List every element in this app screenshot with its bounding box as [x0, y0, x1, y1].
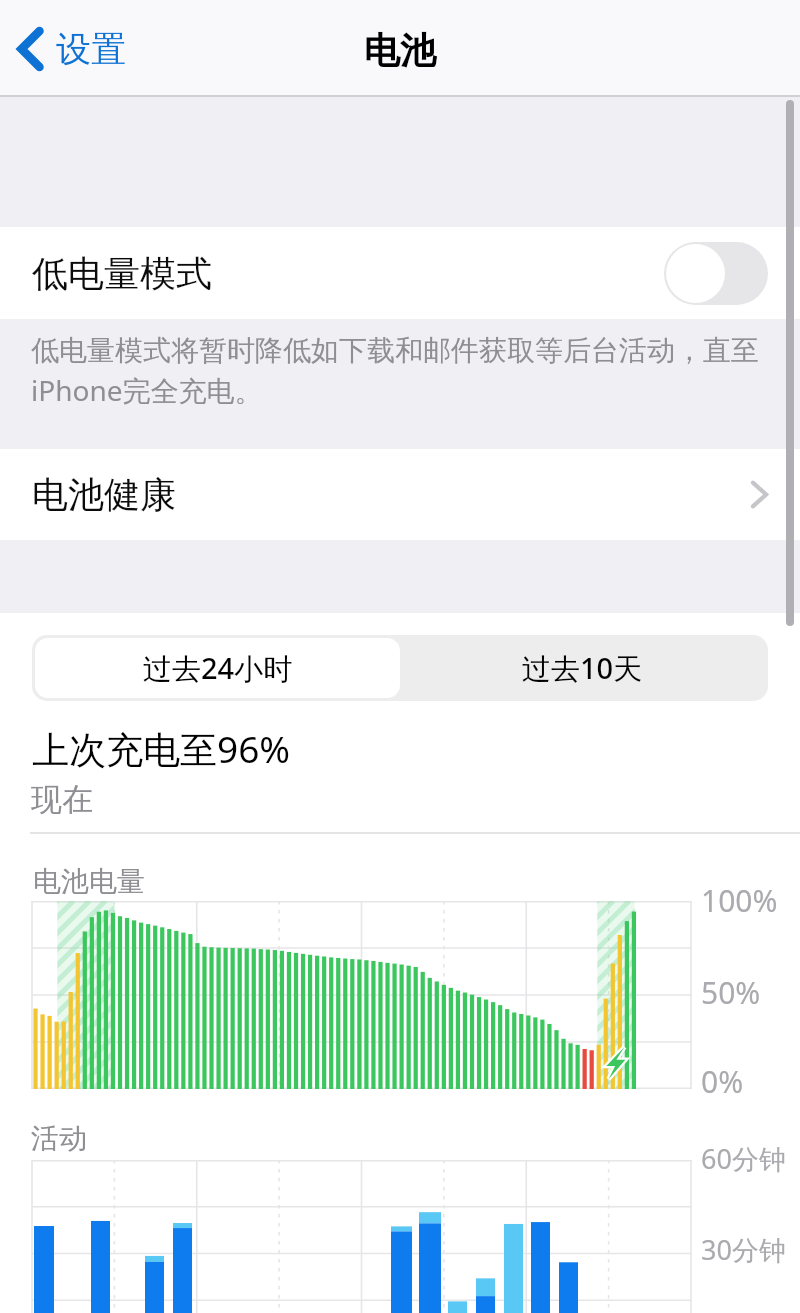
staticText: 电池 [364, 28, 436, 73]
button[interactable]: Low Power Mode toggle [664, 242, 768, 305]
staticText: 50% [701, 972, 761, 1013]
staticText: 100% [701, 880, 778, 921]
button[interactable]: 过去24小时 [35, 638, 400, 698]
button[interactable]: 设置 [13, 19, 131, 79]
staticText: 电池电量 [33, 864, 145, 899]
button[interactable]: 过去10天 [400, 638, 765, 698]
staticText: 60分钟 [701, 1140, 786, 1177]
staticText: 电池健康 [32, 472, 176, 517]
staticText: 0% [701, 1061, 744, 1102]
staticText: 现在 [31, 780, 93, 819]
staticText: 过去10天 [522, 648, 643, 688]
staticText: 活动 [31, 1121, 87, 1156]
staticText: 上次充电至96% [32, 723, 291, 774]
button[interactable]: 低电量模式 [0, 227, 800, 319]
staticText: 设置 [56, 27, 126, 71]
staticText: 过去24小时 [143, 648, 293, 688]
staticText: 30分钟 [701, 1231, 786, 1268]
other: Battery Health [751, 481, 768, 508]
staticText: 低电量模式 [32, 251, 212, 296]
button[interactable]: 电池健康 [0, 449, 800, 540]
staticText: 低电量模式将暂时降低如下载和邮件获取等后台活动，直至iPhone完全充电。 [31, 333, 790, 410]
